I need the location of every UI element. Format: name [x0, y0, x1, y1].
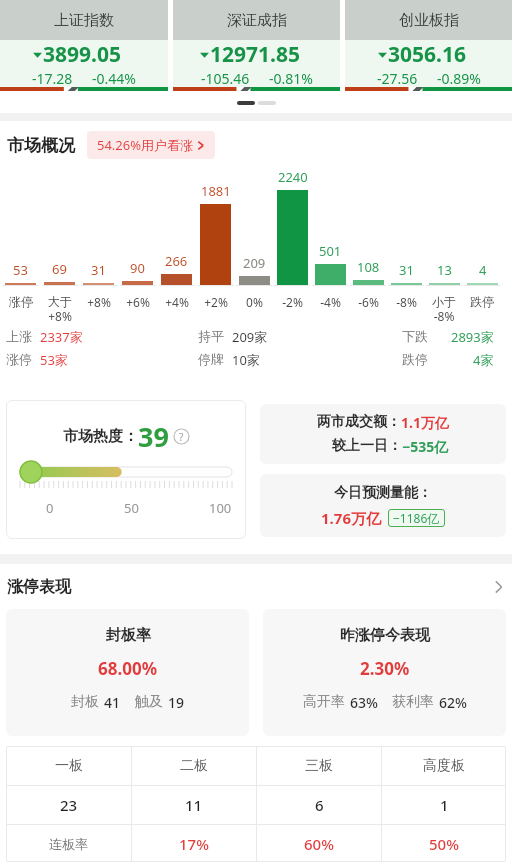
- staticText: 1: [440, 795, 449, 815]
- staticText: 209家: [232, 328, 268, 346]
- staticText: 63%: [350, 693, 378, 712]
- staticText: 创业板指: [399, 11, 459, 30]
- staticText: 60%: [304, 834, 334, 854]
- staticText: -6%: [358, 294, 379, 310]
- staticText: 100: [209, 499, 232, 517]
- staticText: 停牌: [198, 351, 224, 367]
- staticText: 53: [13, 261, 28, 279]
- button[interactable]: 11: [132, 786, 256, 824]
- staticText: 跌停: [402, 351, 428, 367]
- staticText: 19: [168, 693, 185, 712]
- button[interactable]: 昨涨停今表现: [263, 609, 506, 736]
- staticText: 上涨: [6, 328, 32, 344]
- staticText: +6%: [126, 294, 150, 310]
- staticText: 23: [60, 795, 78, 815]
- staticText: 11: [185, 795, 203, 815]
- staticText: 266: [165, 252, 188, 270]
- staticText: 大于 +8%: [48, 294, 72, 324]
- button[interactable]: 上证指数: [0, 0, 168, 91]
- button[interactable]: 1: [382, 786, 506, 824]
- staticText: 1.76万亿: [321, 508, 381, 528]
- button[interactable]: 高度板: [382, 746, 506, 785]
- staticText: 涨停表现: [7, 577, 71, 597]
- staticText: 三板: [305, 757, 333, 775]
- staticText: 3056.16: [388, 40, 466, 69]
- staticText: 2.30%: [360, 657, 410, 680]
- staticText: 209: [243, 254, 266, 272]
- staticText: +4%: [165, 294, 189, 310]
- staticText: 50: [124, 499, 139, 517]
- staticText: 6: [315, 795, 324, 815]
- button[interactable]: 深证成指: [173, 0, 340, 91]
- staticText: 17%: [179, 834, 209, 854]
- staticText: 4: [479, 261, 487, 279]
- staticText: 69: [52, 260, 67, 278]
- button[interactable]: 三板: [257, 746, 381, 785]
- button[interactable]: 6: [257, 786, 381, 824]
- staticText: 108: [357, 258, 380, 276]
- staticText: 涨停: [6, 351, 32, 367]
- button[interactable]: 一板: [6, 746, 131, 785]
- staticText: 10家: [232, 351, 260, 369]
- staticText: -0.44%: [92, 69, 136, 87]
- staticText: 62%: [439, 693, 467, 712]
- button[interactable]: 23: [6, 786, 131, 824]
- button[interactable]: 54.26%用户看涨: [87, 131, 215, 159]
- button[interactable]: 二板: [132, 746, 256, 785]
- staticText: 一板: [55, 757, 83, 775]
- staticText: 39: [138, 418, 169, 455]
- staticText: 90: [130, 259, 145, 277]
- staticText: 50%: [429, 834, 459, 854]
- staticText: 连板率: [49, 836, 88, 852]
- staticText: 12971.85: [210, 40, 300, 69]
- staticText: 市场热度：: [63, 427, 138, 446]
- staticText: 跌停: [470, 294, 494, 309]
- staticText: 31: [91, 261, 106, 279]
- staticText: −1186亿: [393, 510, 440, 526]
- staticText: ?: [179, 430, 184, 444]
- button[interactable]: 今日预测量能：: [260, 474, 506, 537]
- button[interactable]: 两市成交额：: [260, 404, 506, 464]
- staticText: -4%: [320, 294, 341, 310]
- staticText: 深证成指: [227, 11, 287, 30]
- staticText: 54.26%用户看涨: [97, 136, 194, 154]
- staticText: 13: [437, 261, 452, 279]
- staticText: 触及: [135, 693, 163, 711]
- staticText: 较上一日：: [332, 437, 402, 455]
- staticText: 市场概况: [7, 135, 75, 156]
- staticText: 封板: [71, 693, 99, 711]
- staticText: 0%: [246, 294, 263, 310]
- staticText: 2893家: [451, 328, 494, 346]
- staticText: 4家: [473, 351, 494, 369]
- button[interactable]: 封板率: [6, 609, 249, 736]
- staticText: -105.46: [201, 69, 250, 87]
- staticText: 53家: [40, 351, 68, 369]
- staticText: 1881: [201, 182, 231, 200]
- staticText: 下跌: [402, 328, 428, 344]
- staticText: 持平: [198, 328, 224, 344]
- staticText: 31: [399, 261, 414, 279]
- staticText: 今日预测量能：: [334, 484, 432, 502]
- button[interactable]: 创业板指: [345, 0, 512, 91]
- staticText: -8%: [396, 294, 417, 310]
- staticText: -0.89%: [437, 69, 481, 87]
- staticText: -2%: [282, 294, 303, 310]
- staticText: 高开率: [303, 693, 345, 711]
- staticText: +2%: [204, 294, 228, 310]
- staticText: 2240: [278, 168, 308, 186]
- staticText: 二板: [180, 757, 208, 775]
- staticText: +8%: [87, 294, 111, 310]
- staticText: 3899.05: [43, 40, 121, 69]
- staticText: −535亿: [402, 437, 449, 456]
- staticText: 两市成交额：: [317, 413, 401, 431]
- staticText: -0.81%: [269, 69, 313, 87]
- button[interactable]: 市场热度：: [6, 400, 246, 539]
- staticText: 1.1万亿: [401, 413, 449, 432]
- staticText: 高度板: [423, 757, 465, 775]
- staticText: 昨涨停今表现: [340, 626, 430, 645]
- staticText: 上证指数: [54, 11, 114, 30]
- button[interactable]: 涨停表现: [7, 577, 505, 597]
- staticText: 501: [319, 242, 342, 260]
- staticText: 小于 -8%: [432, 294, 456, 324]
- staticText: 2337家: [40, 328, 83, 346]
